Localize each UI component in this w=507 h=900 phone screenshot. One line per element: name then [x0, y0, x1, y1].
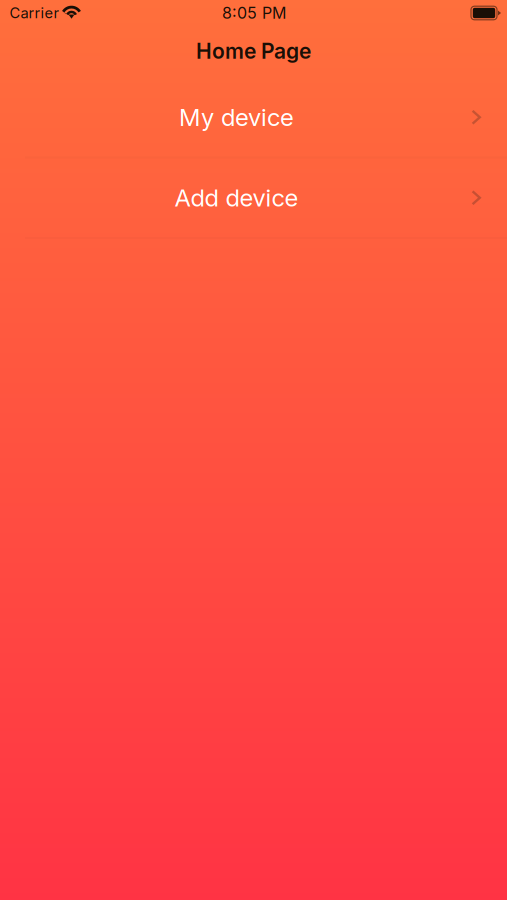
staticText: Carrier — [9, 4, 59, 22]
button[interactable]: My device — [0, 78, 507, 156]
staticText: Home Page — [196, 38, 311, 64]
staticText: Add device — [174, 183, 298, 212]
staticText: My device — [179, 103, 294, 132]
button[interactable]: Add device — [0, 158, 507, 237]
staticText: 8:05 PM — [222, 3, 286, 23]
